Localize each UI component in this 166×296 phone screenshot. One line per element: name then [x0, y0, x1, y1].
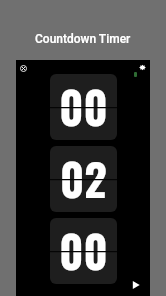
button[interactable]: 02	[50, 146, 117, 212]
staticText: 02	[60, 146, 107, 211]
button[interactable]: Cancel	[16, 61, 30, 75]
staticText: Countdown Timer	[35, 32, 131, 46]
staticText: 00	[59, 74, 108, 139]
button[interactable]: 00	[50, 74, 117, 140]
button[interactable]: Start	[126, 275, 146, 295]
staticText: 00	[59, 218, 108, 283]
button[interactable]: Settings	[135, 60, 149, 74]
button[interactable]: 00	[50, 218, 117, 284]
